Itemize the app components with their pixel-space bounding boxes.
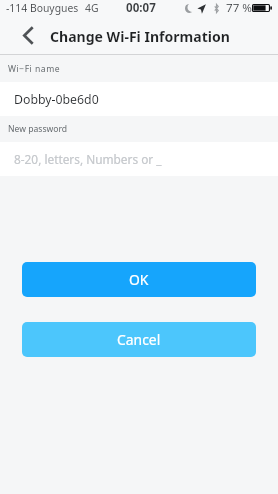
- button[interactable]: OK: [22, 262, 256, 297]
- staticText: Change Wi-Fi Information: [50, 27, 230, 46]
- staticText: Dobby-0be6d0: [14, 91, 99, 108]
- staticText: OK: [129, 270, 149, 289]
- staticText: 4G: [85, 1, 99, 15]
- button[interactable]: Cancel: [22, 322, 256, 357]
- staticText: 8-20, letters, Numbers or _: [14, 151, 162, 167]
- button[interactable]: Dobby-0be6d0: [0, 82, 278, 116]
- button[interactable]: Back: [0, 16, 56, 55]
- staticText: -114 Bouygues: [6, 1, 79, 15]
- staticText: 77 %: [226, 0, 252, 16]
- staticText: New password: [8, 123, 68, 135]
- staticText: Wi−Fi name: [8, 63, 61, 75]
- staticText: 00:07: [126, 0, 156, 16]
- staticText: Cancel: [117, 330, 161, 349]
- button[interactable]: 8-20, letters, Numbers or _: [0, 142, 278, 176]
